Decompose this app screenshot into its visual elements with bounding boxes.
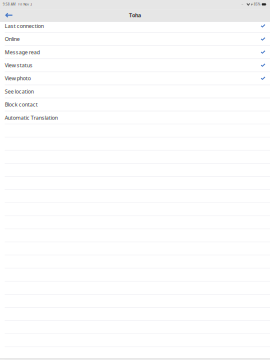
staticText: Message read — [5, 48, 40, 56]
staticText: See location — [5, 88, 34, 95]
button[interactable]: View photo — [0, 72, 270, 85]
button[interactable]: Last connection — [0, 20, 270, 33]
button[interactable]: Message read — [0, 46, 270, 59]
button[interactable]: Online — [0, 33, 270, 46]
button[interactable]: View status — [0, 59, 270, 72]
staticText: View status — [5, 62, 33, 69]
button[interactable]: Automatic Translation — [0, 111, 270, 125]
staticText: Automatic Translation — [5, 114, 58, 121]
staticText: Online — [5, 35, 20, 43]
staticText: Toha — [129, 12, 141, 19]
button[interactable]: Back — [0, 9, 17, 21]
button[interactable]: Block contact — [0, 98, 270, 111]
staticText: Fri Nov 3 — [18, 2, 32, 7]
staticText: View photo — [5, 75, 31, 82]
staticText: 9:58 AM — [3, 2, 16, 7]
staticText: Last connection — [5, 22, 44, 30]
staticText: Block contact — [5, 101, 38, 108]
staticText: 85% — [254, 2, 261, 7]
button[interactable]: See location — [0, 85, 270, 98]
